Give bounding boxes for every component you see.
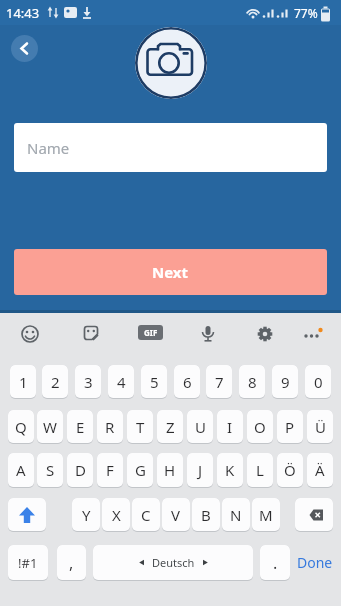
button[interactable] (194, 320, 222, 348)
button[interactable]: X (102, 498, 130, 531)
button[interactable]: 4 (108, 365, 134, 398)
button[interactable] (16, 320, 44, 348)
button[interactable]: C (132, 498, 160, 531)
button[interactable] (8, 498, 46, 531)
button[interactable]: 7 (206, 365, 232, 398)
staticText: J (198, 460, 203, 480)
button[interactable] (78, 320, 106, 348)
staticText: 8 (248, 372, 257, 392)
button[interactable]: Ä (307, 453, 333, 487)
staticText: C (141, 505, 151, 525)
button[interactable]: R (97, 410, 123, 443)
button[interactable]: 2 (42, 365, 68, 398)
staticText: 5 (150, 372, 159, 392)
button[interactable]: 3 (75, 365, 101, 398)
staticText: L (256, 460, 264, 480)
staticText: X (112, 505, 121, 525)
staticText: T (136, 417, 145, 437)
button[interactable]: 9 (272, 365, 298, 398)
staticText: 2 (51, 372, 60, 392)
button[interactable]: !#1 (8, 545, 48, 580)
staticText: K (225, 460, 235, 480)
button[interactable]: 6 (174, 365, 200, 398)
staticText: Deutsch (152, 555, 195, 570)
button[interactable] (299, 320, 327, 348)
button[interactable]: N (222, 498, 250, 531)
staticText: A (16, 460, 26, 480)
staticText: Name (27, 138, 70, 158)
button[interactable]: Done (293, 545, 337, 580)
staticText: R (105, 417, 115, 437)
staticText: M (259, 505, 273, 525)
button[interactable]: V (162, 498, 190, 531)
staticText: E (76, 417, 85, 437)
button[interactable]: 1 (10, 365, 36, 398)
staticText: 0 (314, 372, 323, 392)
button[interactable] (251, 320, 279, 348)
button[interactable]: Name (14, 123, 327, 172)
button[interactable]: F (97, 453, 123, 487)
button[interactable]: H (157, 453, 183, 487)
staticText: S (46, 460, 55, 480)
staticText: Done (297, 553, 333, 572)
button[interactable]: , (57, 545, 86, 580)
button[interactable]: M (252, 498, 280, 531)
button[interactable]: P (277, 410, 303, 443)
staticText: Next (152, 262, 189, 282)
button[interactable]: U (187, 410, 213, 443)
button[interactable]: Next (14, 249, 327, 295)
staticText: F (106, 460, 114, 480)
button[interactable]: S (37, 453, 63, 487)
button[interactable]: 5 (141, 365, 167, 398)
staticText: Ö (284, 460, 296, 480)
button[interactable]: 0 (305, 365, 331, 398)
button[interactable]: B (192, 498, 220, 531)
button[interactable]: GIF (138, 325, 163, 340)
staticText: 3 (84, 372, 93, 392)
button[interactable]: G (127, 453, 153, 487)
staticText: 77% (294, 5, 318, 21)
button[interactable] (295, 498, 333, 531)
button[interactable]: D (67, 453, 93, 487)
button[interactable] (135, 27, 207, 99)
staticText: G (135, 460, 146, 480)
button[interactable]: Z (157, 410, 183, 443)
staticText: 7 (215, 372, 224, 392)
button[interactable]: I (217, 410, 243, 443)
staticText: O (254, 417, 266, 437)
staticText: 9 (281, 372, 290, 392)
staticText: H (164, 460, 176, 480)
button[interactable]: E (67, 410, 93, 443)
staticText: N (230, 505, 242, 525)
button[interactable]: T (127, 410, 153, 443)
button[interactable]: O (247, 410, 273, 443)
button[interactable] (11, 35, 38, 62)
button[interactable]: J (187, 453, 213, 487)
button[interactable]: W (37, 410, 63, 443)
staticText: I (227, 417, 233, 437)
staticText: Ü (315, 417, 326, 437)
staticText: B (201, 505, 211, 525)
staticText: , (69, 552, 74, 574)
staticText: U (195, 417, 206, 437)
staticText: 6 (183, 372, 192, 392)
staticText: Q (15, 417, 27, 437)
staticText: 14:43 (6, 4, 40, 22)
button[interactable]: Ö (277, 453, 303, 487)
staticText: P (285, 417, 295, 437)
button[interactable]: . (260, 545, 290, 580)
staticText: Z (166, 417, 175, 437)
button[interactable]: L (247, 453, 273, 487)
staticText: GIF (144, 327, 158, 338)
staticText: W (43, 417, 57, 437)
button[interactable]: K (217, 453, 243, 487)
button[interactable]: Deutsch (93, 545, 253, 580)
staticText: Ä (315, 460, 325, 480)
staticText: 1 (19, 372, 28, 392)
staticText: V (171, 505, 181, 525)
button[interactable]: 8 (239, 365, 265, 398)
button[interactable]: A (8, 453, 34, 487)
button[interactable]: Y (72, 498, 100, 531)
button[interactable]: Q (8, 410, 34, 443)
button[interactable]: Ü (307, 410, 333, 443)
